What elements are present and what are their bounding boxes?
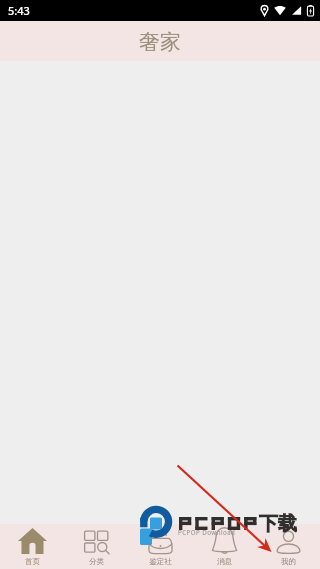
staticText: 分类 <box>89 557 104 566</box>
button[interactable]: 鉴定社 <box>128 524 192 569</box>
staticText: 首页 <box>25 557 40 566</box>
staticText: 奢家 <box>139 29 181 55</box>
button[interactable]: 分类 <box>64 524 128 569</box>
staticText: PCPOP Download <box>178 528 236 536</box>
staticText: 消息 <box>217 557 232 566</box>
staticText: 鉴定社 <box>149 557 172 566</box>
button[interactable]: 我的 <box>256 524 320 569</box>
staticText: 我的 <box>281 557 296 566</box>
button[interactable]: 首页 <box>0 524 64 569</box>
staticText: 下载 <box>259 512 297 536</box>
button[interactable]: 消息 <box>192 524 256 569</box>
staticText: 5:43 <box>8 3 30 18</box>
